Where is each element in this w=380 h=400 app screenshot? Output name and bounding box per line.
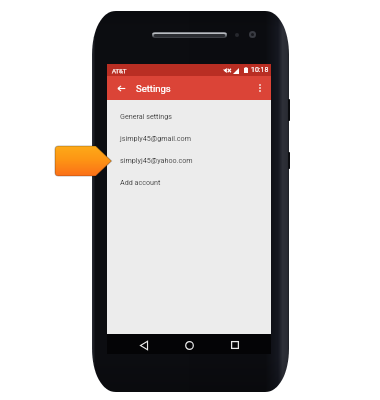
button[interactable]: Back xyxy=(136,337,152,353)
staticText: AT&T xyxy=(112,67,127,74)
button[interactable]: simplyj45@yahoo.com xyxy=(107,149,271,171)
staticText: Settings xyxy=(136,83,171,94)
button[interactable]: Back xyxy=(107,76,135,100)
staticText: jsimply45@gmail.com xyxy=(120,134,192,142)
button[interactable]: jsimply45@gmail.com xyxy=(107,127,271,149)
staticText: Add account xyxy=(120,178,161,186)
button[interactable]: General settings xyxy=(107,105,271,127)
staticText: simplyj45@yahoo.com xyxy=(120,156,193,164)
staticText: General settings xyxy=(120,112,172,120)
button[interactable]: More options xyxy=(249,76,271,100)
button[interactable]: Home xyxy=(181,337,197,353)
button[interactable]: Callout pointer xyxy=(55,146,112,176)
staticText: 10:18 xyxy=(251,66,269,74)
button[interactable]: Add account xyxy=(107,171,271,193)
button[interactable]: Recent apps xyxy=(227,337,243,353)
